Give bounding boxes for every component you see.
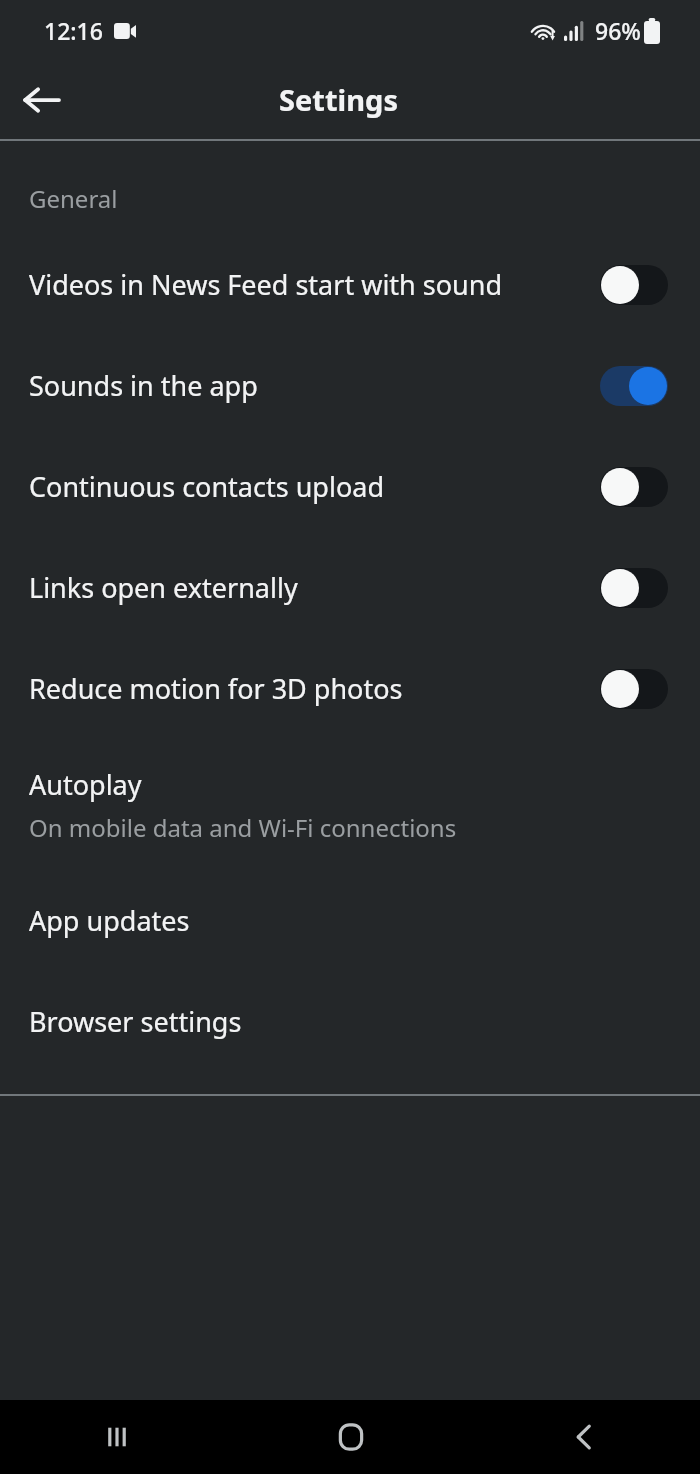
button[interactable]: Sounds in the app — [0, 335, 700, 436]
staticText: Continuous contacts upload — [29, 468, 600, 505]
button[interactable]: Off — [600, 568, 668, 608]
button[interactable]: Videos in News Feed start with sound — [0, 234, 700, 335]
staticText: Links open externally — [29, 569, 600, 606]
button[interactable]: On — [600, 366, 668, 406]
button[interactable]: Continuous contacts upload — [0, 436, 700, 537]
button[interactable]: Links open externally — [0, 537, 700, 638]
staticText: On mobile data and Wi-Fi connections — [29, 811, 457, 844]
button[interactable]: Reduce motion for 3D photos — [0, 638, 700, 739]
staticText: Sounds in the app — [29, 367, 600, 404]
staticText: Settings — [279, 80, 398, 119]
staticText: App updates — [29, 902, 190, 939]
staticText: Reduce motion for 3D photos — [29, 670, 600, 707]
staticText: General — [29, 182, 118, 215]
button[interactable]: Off — [600, 467, 668, 507]
button[interactable]: Off — [600, 265, 668, 305]
staticText: Autoplay — [29, 766, 142, 803]
staticText: Browser settings — [29, 1003, 242, 1040]
button[interactable]: Home — [234, 1400, 467, 1474]
button[interactable]: Off — [600, 669, 668, 709]
staticText: 12:16 — [44, 15, 103, 46]
button[interactable]: Browser settings — [0, 971, 700, 1072]
staticText: 96% — [595, 15, 641, 46]
button[interactable]: Autoplay — [0, 739, 700, 870]
staticText: Videos in News Feed start with sound — [29, 266, 600, 303]
button[interactable]: Recents — [0, 1400, 234, 1474]
button[interactable]: Back — [467, 1400, 700, 1474]
button[interactable]: App updates — [0, 870, 700, 971]
button[interactable]: Back — [12, 71, 70, 129]
